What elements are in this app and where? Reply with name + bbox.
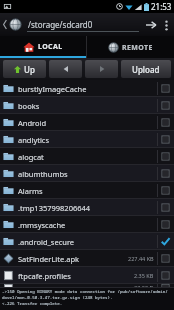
staticText: 2.35 KB bbox=[134, 272, 154, 279]
button[interactable]: .android_secure bbox=[0, 233, 174, 250]
button[interactable]: ftpcafe.profiles bbox=[0, 267, 174, 284]
button[interactable]: albumthumbs bbox=[0, 165, 174, 182]
staticText: 33.00 B bbox=[134, 284, 154, 288]
staticText: /storage/sdcard0 bbox=[28, 19, 93, 30]
button[interactable]: SatFinderLite.apk bbox=[0, 250, 174, 267]
staticText: ->150 Opening BINARY mode data connectio… bbox=[2, 289, 172, 295]
button[interactable]: books bbox=[0, 97, 174, 114]
staticText: REMOTE bbox=[122, 43, 153, 53]
staticText: alogcat bbox=[18, 152, 154, 162]
staticText: burstlyImageCache bbox=[18, 84, 154, 94]
button[interactable]: Not selected bbox=[161, 186, 170, 195]
staticText: .mmsyscache bbox=[18, 220, 154, 230]
staticText: Up bbox=[24, 64, 35, 75]
button[interactable]: .mmsyscache bbox=[0, 216, 174, 233]
staticText: ftpcafe.profiles bbox=[18, 271, 134, 281]
button[interactable]: LOCAL bbox=[0, 36, 86, 58]
button[interactable]: Selected bbox=[161, 237, 170, 246]
button[interactable]: andlytics bbox=[0, 131, 174, 148]
staticText: Android bbox=[18, 118, 154, 128]
button[interactable]: REMOTE bbox=[87, 36, 174, 58]
staticText: andlytics bbox=[18, 135, 154, 145]
staticText: 21:53 bbox=[151, 1, 172, 12]
staticText: albumthumbs bbox=[18, 169, 154, 179]
staticText: LOCAL bbox=[38, 42, 63, 52]
button[interactable]: Not selected bbox=[161, 152, 170, 161]
staticText: .tmp1357998206644 bbox=[18, 203, 154, 213]
button[interactable]: Not selected bbox=[161, 284, 170, 288]
button[interactable]: burstlyImageCache bbox=[0, 80, 174, 97]
staticText: Upload bbox=[132, 64, 160, 75]
button[interactable]: .bugsense bbox=[0, 284, 174, 288]
staticText: Alarms bbox=[18, 186, 154, 196]
button[interactable]: Navigate up bbox=[2, 18, 23, 31]
staticText: 227.44 KB bbox=[128, 255, 154, 262]
button[interactable]: /storage/sdcard0 bbox=[27, 17, 139, 32]
button[interactable]: Back bbox=[49, 60, 82, 78]
button[interactable]: Not selected bbox=[161, 271, 170, 280]
button[interactable]: Alarms bbox=[0, 182, 174, 199]
button[interactable]: Not selected bbox=[161, 254, 170, 263]
button[interactable]: Up bbox=[3, 60, 46, 78]
button[interactable]: Forward bbox=[85, 60, 118, 78]
button[interactable]: Android bbox=[0, 114, 174, 131]
staticText: .android_secure bbox=[18, 237, 154, 247]
staticText: SatFinderLite.apk bbox=[18, 254, 128, 264]
button[interactable]: Upload bbox=[121, 60, 171, 78]
button[interactable]: Not selected bbox=[161, 203, 170, 212]
staticText: <-226 Transfer complete. bbox=[2, 301, 63, 307]
button[interactable]: Not selected bbox=[161, 84, 170, 93]
button[interactable]: Not selected bbox=[161, 220, 170, 229]
staticText: books bbox=[18, 101, 154, 111]
button[interactable]: Not selected bbox=[161, 101, 170, 110]
button[interactable]: Not selected bbox=[161, 118, 170, 127]
button[interactable]: Not selected bbox=[161, 135, 170, 144]
button[interactable]: alogcat bbox=[0, 148, 174, 165]
staticText: dovel/mon-0.50.3-47.tar.gz.sign (248 byt… bbox=[2, 295, 113, 301]
button[interactable]: Not selected bbox=[161, 169, 170, 178]
button[interactable]: Go bbox=[142, 16, 160, 34]
button[interactable]: More options bbox=[160, 15, 172, 35]
staticText: .bugsense bbox=[18, 284, 134, 288]
button[interactable]: .tmp1357998206644 bbox=[0, 199, 174, 216]
